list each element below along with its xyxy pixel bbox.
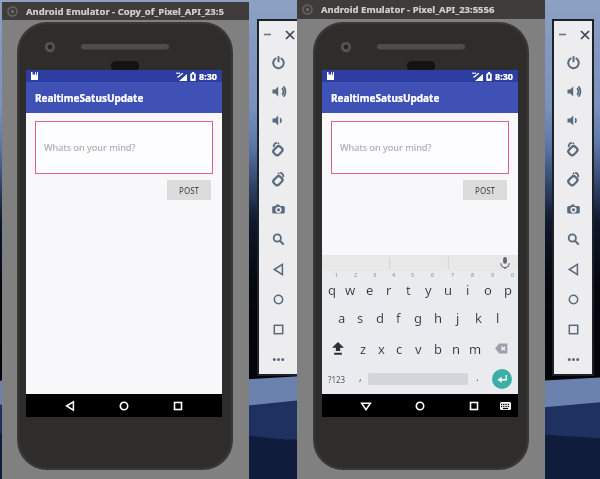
button[interactable]: rotl	[259, 135, 297, 164]
button[interactable]: rotr	[554, 164, 592, 194]
button[interactable]: Recents	[447, 394, 501, 417]
button[interactable]: more	[259, 344, 297, 374]
button[interactable]: recents	[554, 314, 592, 344]
staticText: 6	[431, 271, 435, 278]
button[interactable]: back	[554, 254, 592, 284]
button[interactable]: Minimize	[556, 28, 569, 41]
button[interactable]: .	[468, 364, 486, 394]
staticText: n	[452, 340, 461, 358]
staticText: g	[414, 309, 422, 327]
button[interactable]: Back	[43, 394, 97, 417]
button[interactable]: Recents	[151, 394, 205, 417]
button[interactable]: back	[259, 254, 297, 284]
button[interactable]: 9	[478, 271, 498, 302]
staticText: k	[475, 309, 482, 327]
button[interactable]: POST	[167, 180, 211, 200]
button[interactable]: Hide keyboard	[339, 394, 393, 417]
button[interactable]: k	[468, 302, 488, 333]
button[interactable]: Close	[283, 28, 296, 41]
staticText: m	[469, 340, 482, 358]
staticText: j	[456, 309, 460, 327]
button[interactable]: Minimize	[261, 28, 274, 41]
button[interactable]: 0	[498, 271, 518, 302]
button[interactable]: recents	[259, 314, 297, 344]
staticText: ,	[359, 370, 362, 384]
staticText: q	[328, 281, 336, 299]
button[interactable]: a	[332, 302, 351, 333]
button[interactable]: ?123	[322, 364, 352, 394]
staticText: RealtimeSatusUpdate	[331, 91, 440, 105]
button[interactable]: ,	[352, 364, 368, 394]
button[interactable]: Close	[578, 28, 591, 41]
button[interactable]: power	[554, 48, 592, 77]
button[interactable]: 8	[458, 271, 478, 302]
button[interactable]: g	[408, 302, 428, 333]
button[interactable]: s	[351, 302, 370, 333]
button[interactable]: 1	[322, 271, 341, 302]
button[interactable]: 6	[418, 271, 438, 302]
staticText: o	[484, 281, 492, 299]
staticText: f	[396, 309, 401, 327]
button[interactable]: 2	[341, 271, 360, 302]
button[interactable]: home	[554, 284, 592, 314]
button[interactable]: v	[409, 333, 428, 364]
button[interactable]: h	[428, 302, 448, 333]
button[interactable]: z	[354, 333, 372, 364]
button[interactable]: Backspace	[485, 333, 518, 364]
button[interactable]: 4	[379, 271, 398, 302]
staticText: w	[345, 281, 356, 299]
button[interactable]: m	[466, 333, 485, 364]
button[interactable]: 5	[398, 271, 418, 302]
button[interactable]: j	[448, 302, 468, 333]
button[interactable]: cam	[259, 194, 297, 224]
button[interactable]: 7	[438, 271, 458, 302]
staticText: r	[386, 281, 392, 299]
staticText: p	[504, 281, 512, 299]
button[interactable]: volup	[554, 77, 592, 106]
button[interactable]: voldn	[259, 106, 297, 135]
button[interactable]: Home	[393, 394, 447, 417]
staticText: 3	[373, 271, 377, 278]
button[interactable]: x	[372, 333, 390, 364]
staticText: 0	[511, 271, 515, 278]
button[interactable]: l	[488, 302, 508, 333]
button[interactable]: POST	[463, 180, 507, 200]
button[interactable]: Whats on your mind?	[331, 121, 509, 174]
button[interactable]: power	[259, 48, 297, 77]
staticText: l	[496, 309, 500, 327]
button[interactable]: zoom	[259, 224, 297, 254]
staticText: 9	[491, 271, 495, 278]
staticText: 8:30	[199, 70, 217, 82]
staticText: Android Emulator - Copy_of_Pixel_API_23:…	[26, 5, 224, 18]
button[interactable]: Shift	[322, 333, 354, 364]
button[interactable]: 3	[360, 271, 379, 302]
staticText: s	[357, 309, 364, 327]
button[interactable]: rotr	[259, 164, 297, 194]
staticText: h	[434, 309, 443, 327]
staticText: Whats on your mind?	[340, 141, 432, 154]
button[interactable]: d	[370, 302, 389, 333]
button[interactable]: b	[428, 333, 447, 364]
staticText: e	[366, 281, 374, 299]
button[interactable]: rotl	[554, 135, 592, 164]
button[interactable]: Enter	[486, 364, 518, 394]
button[interactable]: volup	[259, 77, 297, 106]
staticText: c	[396, 340, 403, 358]
button[interactable]: voldn	[554, 106, 592, 135]
button[interactable]: n	[447, 333, 466, 364]
staticText: 5	[411, 271, 415, 278]
staticText: y	[425, 281, 432, 299]
button[interactable]: Home	[97, 394, 151, 417]
button[interactable]: cam	[554, 194, 592, 224]
button[interactable]: more	[554, 344, 592, 374]
button[interactable]: c	[390, 333, 409, 364]
button[interactable]: f	[389, 302, 408, 333]
staticText: 7	[451, 271, 455, 278]
button[interactable]: Whats on your mind?	[35, 121, 213, 174]
staticText: POST	[179, 185, 200, 196]
button[interactable]: zoom	[554, 224, 592, 254]
button[interactable]: Switch keyboard	[492, 394, 518, 417]
staticText: Android Emulator - Pixel_API_23:5556	[321, 3, 495, 16]
button[interactable]: home	[259, 284, 297, 314]
